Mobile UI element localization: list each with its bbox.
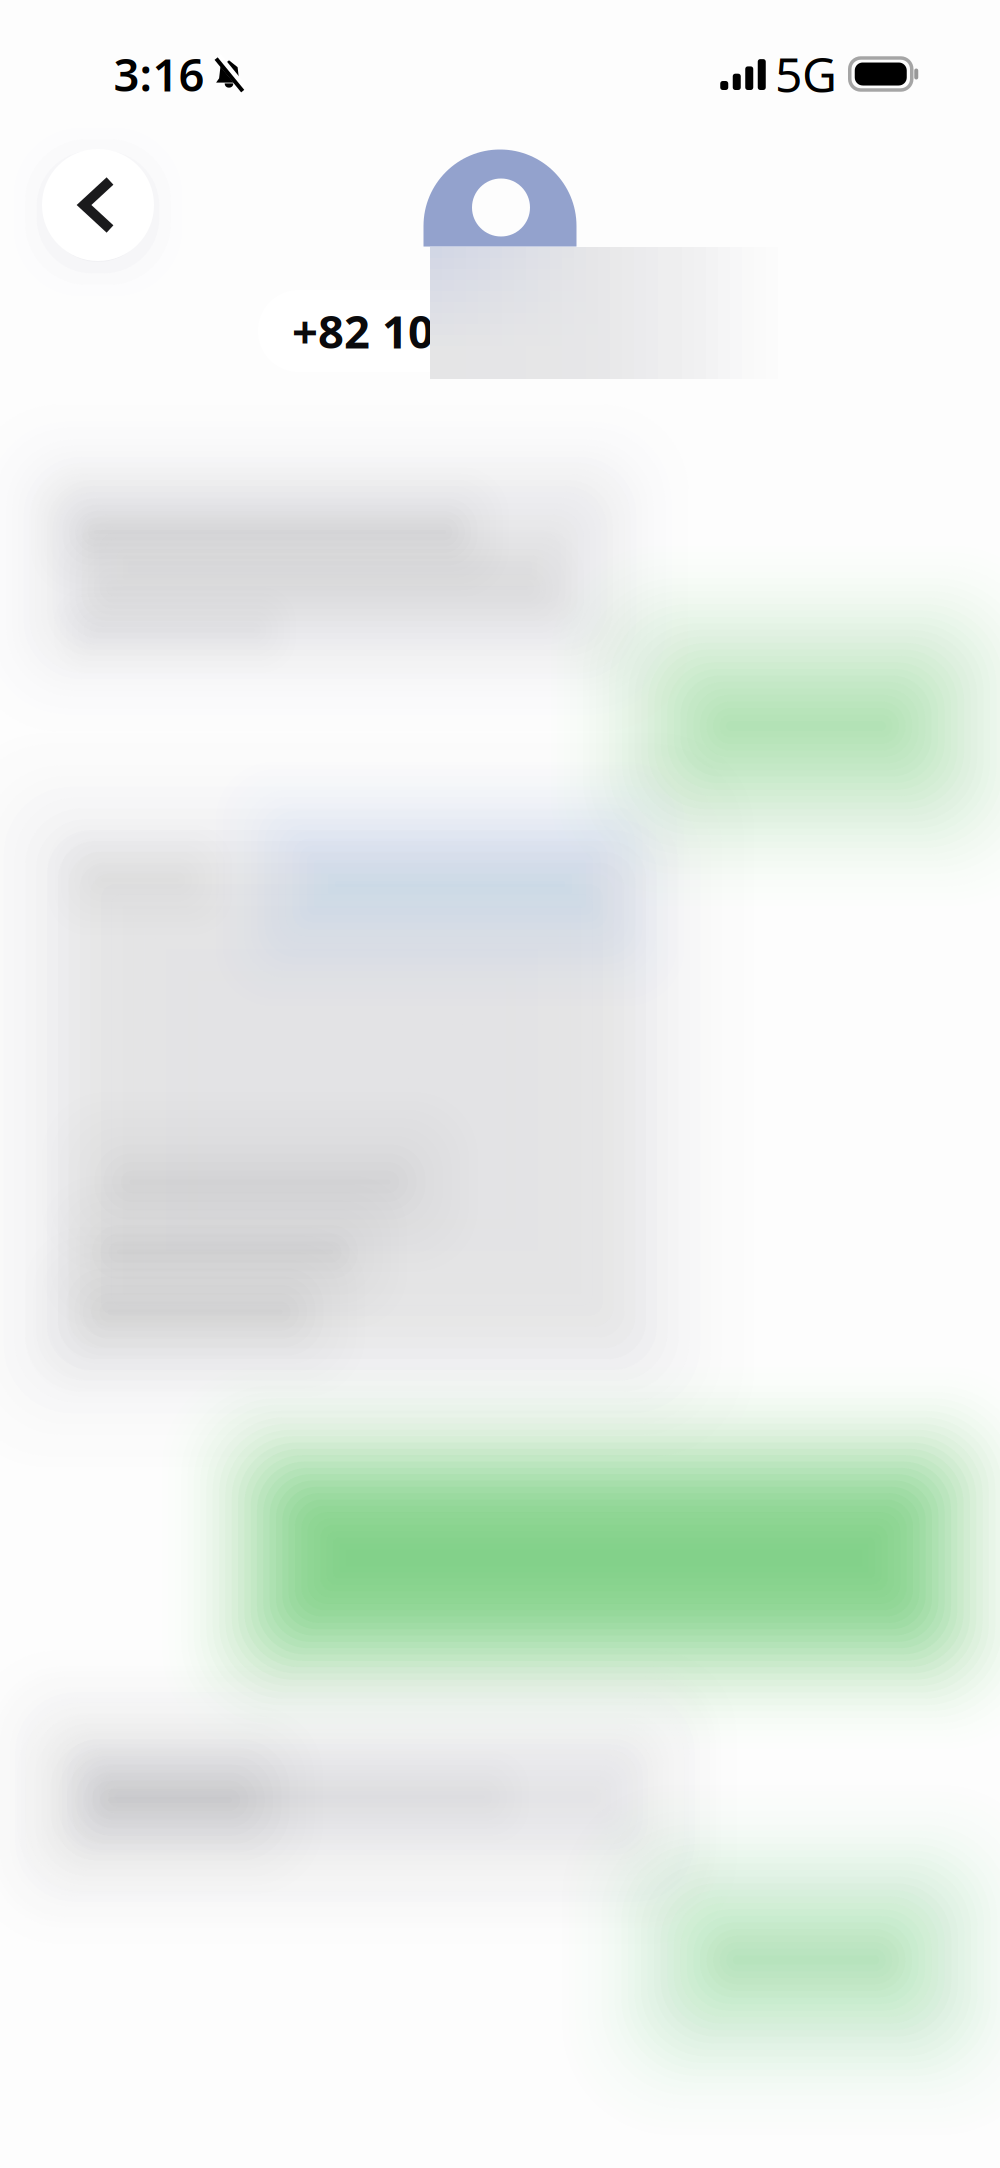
staticText: 3:16 [113, 44, 204, 104]
button[interactable]: Back [42, 149, 154, 261]
button[interactable]: +82 10 [258, 290, 558, 372]
staticText: 5G [775, 42, 837, 106]
staticText: +82 10 [292, 301, 434, 361]
